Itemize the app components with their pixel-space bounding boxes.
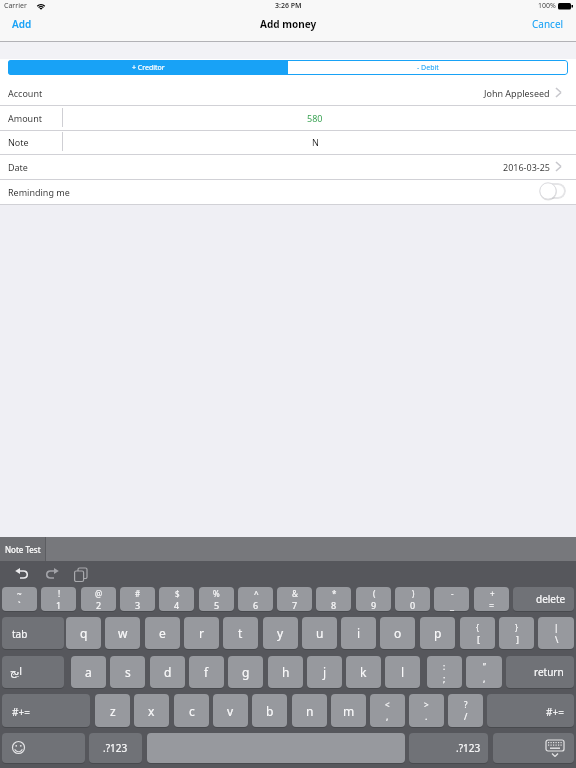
button[interactable]: & [277, 587, 312, 611]
button[interactable]: { [460, 617, 495, 649]
button[interactable]: m [331, 694, 366, 727]
staticText: s [125, 664, 131, 680]
button[interactable]: v [213, 694, 248, 727]
button[interactable]: return [506, 656, 574, 688]
button[interactable]: i [341, 617, 376, 649]
button[interactable]: .?123 [409, 733, 488, 763]
button[interactable]: f [189, 656, 224, 688]
button[interactable]: @ [81, 587, 116, 611]
staticText: 3 [135, 599, 141, 611]
button[interactable]: d [150, 656, 185, 688]
button[interactable]: j [307, 656, 342, 688]
button[interactable]: delete [513, 587, 574, 611]
button[interactable]: q [66, 617, 101, 649]
button[interactable]: n [292, 694, 327, 727]
button[interactable]: w [105, 617, 140, 649]
button[interactable]: r [184, 617, 219, 649]
button[interactable]: ) [395, 587, 430, 611]
button[interactable] [493, 733, 574, 763]
button[interactable]: ^ [238, 587, 273, 611]
button[interactable]: | [538, 617, 574, 649]
button[interactable]: Note Test [0, 537, 45, 561]
button[interactable]: #+= [2, 694, 90, 727]
button[interactable]: ابج [2, 656, 64, 688]
staticText: ? [464, 699, 468, 710]
staticText: % [213, 588, 220, 599]
staticText: John Appleseed [484, 87, 550, 99]
staticText: [ [477, 633, 480, 645]
staticText: . [425, 710, 428, 722]
button[interactable]: t [223, 617, 258, 649]
button[interactable]: z [95, 694, 130, 727]
staticText: ] [516, 633, 519, 645]
staticText: 2 [96, 599, 102, 611]
button[interactable]: + Creditor [8, 60, 288, 75]
button[interactable]: tab [2, 617, 64, 649]
button[interactable]: x [134, 694, 169, 727]
button[interactable]: - Debit [288, 60, 568, 75]
button[interactable]: ? [448, 694, 483, 727]
staticText: c [189, 703, 195, 719]
staticText: : [443, 661, 446, 672]
button[interactable]: u [302, 617, 337, 649]
staticText: v [227, 703, 234, 719]
staticText: i [357, 625, 361, 641]
button[interactable] [540, 183, 566, 199]
staticText: } [515, 622, 519, 633]
button[interactable]: } [499, 617, 534, 649]
staticText: N [312, 136, 319, 148]
button[interactable]: Date [8, 154, 128, 179]
staticText: / [464, 710, 468, 722]
button[interactable]: h [268, 656, 303, 688]
button[interactable]: o [380, 617, 415, 649]
button[interactable]: s [110, 656, 145, 688]
button[interactable] [45, 567, 59, 581]
staticText: ; [443, 672, 446, 684]
button[interactable]: g [228, 656, 263, 688]
button[interactable]: c [174, 694, 209, 727]
button[interactable]: * [316, 587, 351, 611]
staticText: * [332, 588, 337, 599]
button[interactable]: Cancel [480, 11, 564, 36]
button[interactable]: .?123 [89, 733, 142, 763]
button[interactable]: Add [12, 11, 52, 36]
button[interactable]: ~ [2, 587, 37, 611]
button[interactable]: l [385, 656, 420, 688]
staticText: _ [450, 599, 454, 611]
button[interactable] [74, 568, 88, 582]
button[interactable]: y [263, 617, 298, 649]
button[interactable]: a [71, 656, 106, 688]
button[interactable]: Account [8, 80, 128, 105]
button[interactable]: k [346, 656, 381, 688]
button[interactable]: #+= [487, 694, 574, 727]
button[interactable]: # [120, 587, 155, 611]
staticText: , [483, 672, 486, 684]
button[interactable] [15, 567, 29, 581]
button[interactable]: b [252, 694, 287, 727]
staticText: tab [12, 627, 28, 641]
button[interactable]: e [145, 617, 180, 649]
staticText: e [159, 625, 166, 641]
button[interactable]: % [199, 587, 234, 611]
button[interactable]: ( [356, 587, 391, 611]
staticText: < [385, 699, 390, 710]
button[interactable]: - [434, 587, 469, 611]
button[interactable]: > [409, 694, 444, 727]
staticText: 0 [410, 599, 416, 611]
staticText: 6 [253, 599, 259, 611]
staticText: j [323, 664, 327, 680]
button[interactable]: + [474, 587, 509, 611]
staticText: 1 [56, 599, 62, 611]
button[interactable]: : [427, 656, 462, 688]
button[interactable]: < [370, 694, 405, 727]
button[interactable]: $ [159, 587, 194, 611]
button[interactable] [2, 733, 85, 763]
staticText: l [401, 664, 405, 680]
staticText: Note Test [5, 544, 41, 555]
button[interactable]: ! [41, 587, 76, 611]
staticText: { [476, 622, 480, 633]
staticText: Note [8, 136, 29, 148]
button[interactable]: ” [466, 656, 502, 688]
button[interactable]: p [420, 617, 455, 649]
